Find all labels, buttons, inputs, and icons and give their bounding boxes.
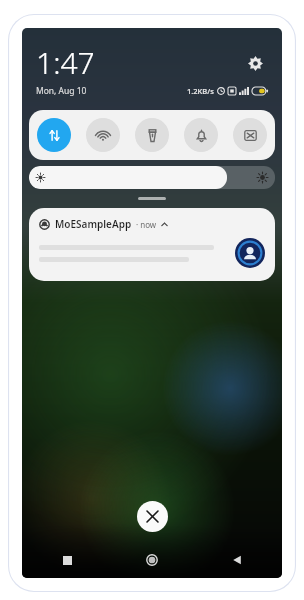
button[interactable]: Screenshot bbox=[233, 118, 267, 152]
button[interactable]: Home bbox=[141, 549, 163, 571]
staticText: 1.2KB/s bbox=[187, 86, 214, 96]
button[interactable]: Settings bbox=[242, 50, 268, 76]
staticText: · now bbox=[136, 219, 157, 230]
button[interactable]: Back bbox=[226, 549, 248, 571]
button[interactable]: Mobile data bbox=[37, 118, 71, 152]
staticText: 1:47 bbox=[36, 42, 95, 83]
button[interactable]: Recent apps bbox=[56, 549, 78, 571]
button[interactable]: MoESampleApp bbox=[29, 208, 275, 281]
button[interactable]: Flashlight bbox=[135, 118, 169, 152]
staticText: Mon, Aug 10 bbox=[36, 85, 87, 97]
button[interactable]: Close notification shade bbox=[137, 501, 168, 532]
staticText: MoESampleApp bbox=[55, 217, 132, 231]
button[interactable]: Wi-Fi bbox=[86, 118, 120, 152]
button[interactable]: Ringer bbox=[184, 118, 218, 152]
button[interactable] bbox=[29, 166, 275, 189]
